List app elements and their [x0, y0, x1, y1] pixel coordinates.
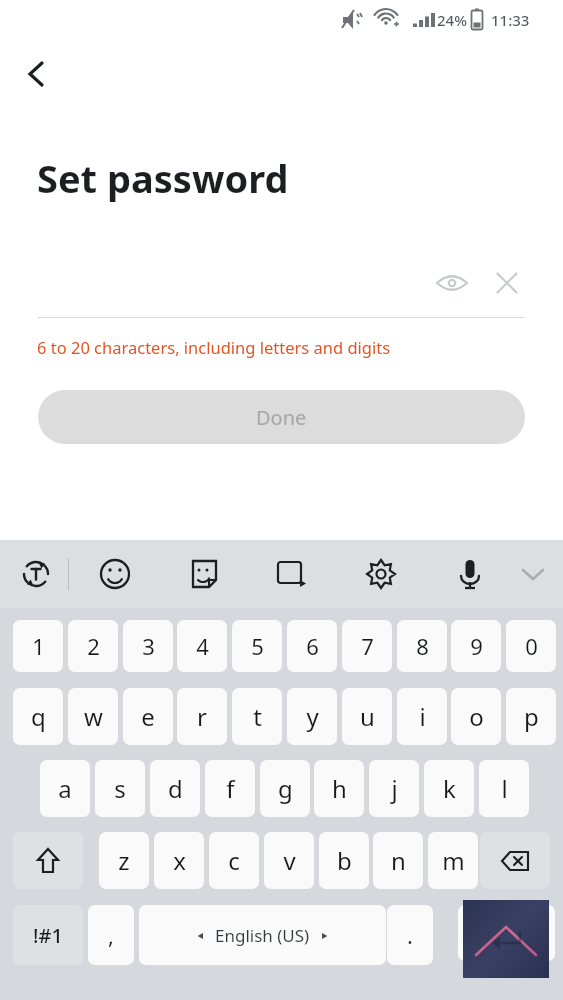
button[interactable]: t [232, 688, 282, 745]
button[interactable]: 6 [287, 620, 337, 672]
staticText: 9 [470, 631, 483, 661]
staticText: d [168, 772, 183, 805]
button[interactable]: 4 [177, 620, 227, 672]
button[interactable]: 7 [342, 620, 392, 672]
button[interactable]: i [397, 688, 447, 745]
button[interactable]: 1 [13, 620, 63, 672]
button[interactable]: !#1 [13, 905, 83, 965]
button[interactable]: . [387, 905, 433, 965]
button[interactable]: Hide keyboard [509, 550, 557, 598]
button[interactable]: b [319, 832, 369, 889]
button[interactable]: h [314, 760, 364, 817]
button[interactable]: 2 [68, 620, 118, 672]
button[interactable]: Emoji [91, 550, 139, 598]
button[interactable]: d [150, 760, 200, 817]
staticText: p [524, 700, 539, 733]
staticText: f [226, 772, 235, 805]
staticText: z [118, 844, 130, 877]
staticText: 3 [142, 631, 155, 661]
button[interactable]: a [40, 760, 90, 817]
staticText: English (US) [215, 924, 310, 947]
button[interactable]: u [342, 688, 392, 745]
button[interactable]: q [13, 688, 63, 745]
staticText: 8 [416, 631, 429, 661]
staticText: Done [256, 404, 307, 431]
button[interactable]: Done [38, 390, 525, 444]
button[interactable]: v [264, 832, 314, 889]
staticText: k [443, 772, 456, 805]
button[interactable]: c [209, 832, 259, 889]
staticText: l [501, 772, 508, 805]
button[interactable]: j [369, 760, 419, 817]
staticText: 6 to 20 characters, including letters an… [37, 336, 391, 358]
staticText: Set password [37, 152, 289, 204]
button[interactable]: Enter [463, 900, 549, 978]
button[interactable]: w [68, 688, 118, 745]
staticText: a [58, 772, 72, 805]
button[interactable]: x [154, 832, 204, 889]
button[interactable]: GIF [267, 550, 315, 598]
staticText: b [337, 844, 352, 877]
button[interactable]: o [451, 688, 501, 745]
staticText: !#1 [33, 922, 63, 949]
button[interactable]: 8 [397, 620, 447, 672]
button[interactable]: Back [8, 48, 60, 100]
button[interactable]: n [373, 832, 423, 889]
button[interactable]: English (US) [139, 905, 386, 965]
button[interactable]: Translate [12, 550, 60, 598]
staticText: 5 [251, 631, 264, 661]
button[interactable]: 9 [451, 620, 501, 672]
button[interactable]: k [424, 760, 474, 817]
button[interactable]: m [428, 832, 478, 889]
staticText: y [306, 700, 319, 733]
button[interactable]: Shift [13, 832, 83, 889]
button[interactable]: r [177, 688, 227, 745]
staticText: x [173, 844, 186, 877]
staticText: v [283, 844, 296, 877]
button[interactable]: z [99, 832, 149, 889]
button[interactable]: 0 [506, 620, 556, 672]
staticText: n [391, 844, 406, 877]
staticText: 4 [196, 631, 209, 661]
staticText: . [407, 920, 413, 950]
staticText: 6 [306, 631, 319, 661]
staticText: q [31, 700, 46, 733]
button[interactable]: Clear [483, 259, 531, 307]
button[interactable]: l [479, 760, 529, 817]
button[interactable]: Show password [428, 259, 476, 307]
staticText: 7 [361, 631, 374, 661]
staticText: u [360, 700, 375, 733]
button[interactable]: Voice input [446, 550, 494, 598]
staticText: , [108, 920, 114, 950]
staticText: s [114, 772, 126, 805]
staticText: j [391, 772, 398, 805]
staticText: e [141, 700, 155, 733]
button[interactable]: 5 [232, 620, 282, 672]
staticText: 0 [525, 631, 538, 661]
staticText: g [278, 772, 293, 805]
staticText: m [442, 844, 465, 877]
button[interactable]: p [506, 688, 556, 745]
button[interactable]: 3 [123, 620, 173, 672]
button[interactable]: g [260, 760, 310, 817]
button[interactable]: e [123, 688, 173, 745]
staticText: c [228, 844, 240, 877]
staticText: o [469, 700, 484, 733]
staticText: t [253, 700, 262, 733]
staticText: 1 [32, 631, 45, 661]
button[interactable]: , [88, 905, 134, 965]
staticText: r [197, 700, 207, 733]
staticText: 2 [87, 631, 100, 661]
button[interactable]: Settings [357, 550, 405, 598]
staticText: h [332, 772, 347, 805]
staticText: 11:33 [491, 10, 530, 30]
button[interactable]: Stickers [179, 550, 227, 598]
button[interactable]: f [205, 760, 255, 817]
staticText: w [84, 700, 103, 733]
button[interactable]: y [287, 688, 337, 745]
staticText: i [419, 700, 426, 733]
button[interactable]: s [95, 760, 145, 817]
staticText: 24% [437, 10, 467, 30]
button[interactable]: Backspace [480, 832, 550, 889]
